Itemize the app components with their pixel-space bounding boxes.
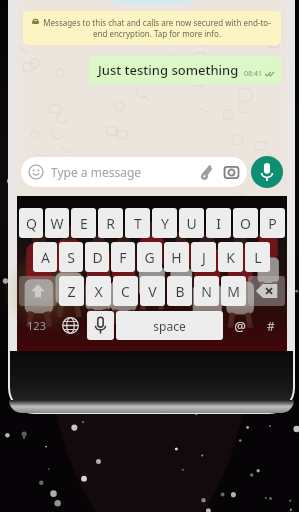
button[interactable]: B bbox=[167, 276, 192, 306]
button[interactable]: Q bbox=[19, 208, 43, 238]
button[interactable]: Z bbox=[59, 276, 84, 306]
button[interactable]: F bbox=[111, 242, 135, 272]
button[interactable]: C bbox=[113, 276, 138, 306]
staticText: Q bbox=[26, 214, 37, 233]
staticText: E bbox=[80, 214, 88, 233]
button[interactable]: P bbox=[260, 208, 285, 238]
staticText: @ bbox=[234, 317, 246, 335]
button[interactable]: Messages to this chat and calls are now … bbox=[23, 11, 281, 45]
button[interactable]: J bbox=[191, 242, 216, 272]
staticText: Messages to this chat and calls are now … bbox=[42, 17, 272, 39]
button[interactable]: 123 bbox=[19, 311, 54, 340]
staticText: T bbox=[134, 214, 142, 233]
button[interactable]: K bbox=[218, 242, 243, 272]
staticText: Y bbox=[161, 214, 169, 233]
staticText: space bbox=[153, 318, 186, 334]
staticText: W bbox=[50, 214, 64, 233]
staticText: I bbox=[216, 214, 221, 233]
staticText: S bbox=[67, 248, 75, 267]
staticText: X bbox=[94, 282, 103, 301]
button[interactable]: @ bbox=[225, 311, 254, 340]
button[interactable]: T bbox=[125, 208, 150, 238]
staticText: V bbox=[148, 282, 157, 301]
button[interactable]: # bbox=[256, 311, 285, 340]
button[interactable]: M bbox=[221, 276, 246, 306]
staticText: B bbox=[175, 282, 185, 301]
button[interactable]: space bbox=[116, 311, 223, 340]
staticText: N bbox=[201, 282, 212, 301]
button[interactable]: Voice input bbox=[87, 311, 114, 340]
button[interactable]: D bbox=[85, 242, 109, 272]
button[interactable]: A bbox=[33, 242, 57, 272]
staticText: G bbox=[144, 248, 155, 267]
staticText: Just testing something bbox=[98, 61, 239, 79]
button[interactable]: O bbox=[233, 208, 258, 238]
staticText: A bbox=[41, 248, 50, 267]
staticText: Type a message bbox=[51, 164, 197, 180]
button[interactable]: W bbox=[45, 208, 69, 238]
staticText: U bbox=[186, 214, 197, 233]
staticText: D bbox=[92, 248, 103, 267]
staticText: F bbox=[119, 248, 127, 267]
staticText: Z bbox=[67, 282, 76, 301]
button[interactable]: H bbox=[164, 242, 189, 272]
button[interactable]: X bbox=[86, 276, 111, 306]
button[interactable]: Attach bbox=[197, 163, 215, 181]
button[interactable]: G bbox=[137, 242, 162, 272]
staticText: # bbox=[267, 318, 275, 334]
button[interactable]: Y bbox=[152, 208, 177, 238]
button[interactable]: Change keyboard bbox=[56, 311, 85, 340]
staticText: J bbox=[202, 248, 206, 267]
staticText: O bbox=[240, 214, 251, 233]
button[interactable]: U bbox=[179, 208, 204, 238]
staticText: H bbox=[171, 248, 182, 267]
button[interactable]: N bbox=[194, 276, 219, 306]
button[interactable]: Shift bbox=[19, 276, 57, 306]
button[interactable]: S bbox=[59, 242, 83, 272]
button[interactable]: L bbox=[245, 242, 270, 272]
button[interactable]: I bbox=[206, 208, 231, 238]
staticText: C bbox=[121, 282, 130, 301]
staticText: L bbox=[254, 248, 262, 267]
staticText: 123 bbox=[27, 318, 46, 333]
button[interactable]: E bbox=[71, 208, 96, 238]
button[interactable]: Backspace bbox=[248, 276, 285, 306]
button[interactable]: R bbox=[98, 208, 123, 238]
staticText: P bbox=[268, 214, 277, 233]
button[interactable]: Camera bbox=[223, 164, 240, 181]
button[interactable]: Voice message bbox=[251, 156, 283, 188]
button[interactable]: Just testing something bbox=[89, 56, 281, 84]
staticText: M bbox=[227, 282, 240, 301]
staticText: K bbox=[226, 248, 235, 267]
staticText: 08:41 bbox=[244, 69, 262, 79]
button[interactable]: Type a message bbox=[21, 157, 247, 187]
button[interactable]: V bbox=[140, 276, 165, 306]
staticText: R bbox=[106, 214, 115, 233]
